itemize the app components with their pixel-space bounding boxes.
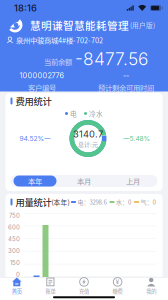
staticText: 18:16: [14, 2, 37, 14]
button[interactable]: 账单: [34, 277, 67, 294]
button[interactable]: 我的: [134, 277, 168, 294]
button[interactable]: 充值: [67, 277, 101, 294]
staticText: 我的: [146, 287, 156, 295]
staticText: 账单: [45, 287, 55, 295]
staticText: 1000002776: [19, 71, 64, 80]
staticText: 泉州中骏商城4#楼-702-702: [16, 35, 103, 45]
staticText: 150: [10, 259, 20, 266]
staticText: 总计:元: [78, 140, 98, 148]
staticText: 冷水: [89, 109, 103, 118]
button[interactable]: ¥: [101, 277, 134, 294]
staticText: --: [123, 71, 129, 80]
staticText: 750: [9, 212, 20, 219]
staticText: -8477.56: [75, 48, 148, 69]
staticText: (本年): [51, 197, 69, 207]
staticText: 用量统计: [15, 195, 51, 209]
staticText: 本年: [28, 176, 42, 186]
staticText: 充值: [79, 287, 89, 295]
button[interactable]: 首页: [0, 277, 34, 294]
staticText: 600: [8, 224, 20, 231]
button[interactable]: 本年: [10, 175, 59, 187]
staticText: 300: [8, 247, 20, 255]
staticText: ¥: [116, 278, 120, 286]
staticText: 费用统计: [15, 94, 51, 108]
staticText: 缴费: [113, 287, 123, 295]
staticText: 3140.7: [73, 128, 103, 140]
staticText: 94.52%: [19, 134, 44, 143]
staticText: 慧明谦智慧能耗管理: [30, 17, 129, 33]
staticText: 5.48%: [129, 134, 150, 143]
staticText: 首页: [12, 287, 22, 295]
staticText: 450: [8, 235, 20, 243]
staticText: 0: [16, 271, 20, 278]
staticText: 水：0: [116, 198, 131, 206]
staticText: 当前余额: [44, 56, 72, 67]
button[interactable]: 上月: [108, 175, 157, 187]
staticText: 电: [70, 109, 77, 118]
staticText: 气：0: [140, 198, 155, 206]
staticText: 客户编号: [28, 82, 56, 93]
button[interactable]: 本月: [59, 175, 108, 187]
staticText: (用户版): [129, 20, 155, 30]
staticText: 上月: [126, 176, 140, 186]
staticText: 预计剩余可用时间: [98, 82, 154, 93]
staticText: 本月: [77, 176, 91, 186]
staticText: 电：3298.6: [77, 198, 106, 206]
